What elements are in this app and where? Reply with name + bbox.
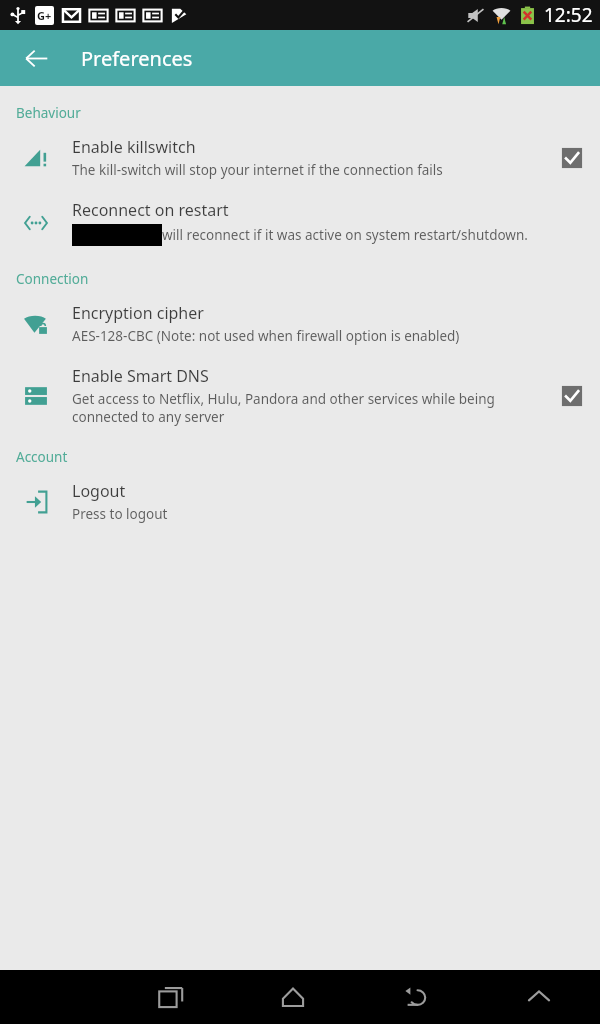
button[interactable]: Navigate up <box>12 34 60 82</box>
button[interactable]: Show navigation <box>477 970 600 1024</box>
staticText: Encryption cipher <box>72 302 204 324</box>
button[interactable]: Reconnect on restart <box>0 189 600 256</box>
staticText: Enable Smart DNS <box>72 365 209 387</box>
button[interactable]: Enable killswitch <box>0 126 600 189</box>
staticText: Connection <box>16 270 600 288</box>
button[interactable]: Recents <box>110 970 232 1024</box>
button[interactable]: Enable Smart DNS <box>0 355 600 436</box>
staticText: Get access to Netflix, Hulu, Pandora and… <box>72 390 497 426</box>
staticText: will reconnect if it was active on syste… <box>162 226 528 244</box>
staticText: Enable killswitch <box>72 136 196 158</box>
staticText: Reconnect on restart <box>72 199 229 221</box>
staticText: The kill-switch will stop your internet … <box>72 161 443 179</box>
button[interactable]: Logout <box>0 470 600 533</box>
button[interactable]: Encryption cipher <box>0 292 600 355</box>
staticText: Behaviour <box>16 104 600 122</box>
staticText: Account <box>16 448 600 466</box>
staticText: 12:52 <box>544 2 593 28</box>
staticText: AES-128-CBC (Note: not used when firewal… <box>72 327 460 345</box>
button[interactable]: Home <box>232 970 354 1024</box>
staticText: Preferences <box>81 45 193 72</box>
button[interactable]: Back <box>354 970 477 1024</box>
staticText: Press to logout <box>72 505 168 523</box>
staticText: G+ <box>37 8 52 23</box>
staticText: Logout <box>72 480 126 502</box>
